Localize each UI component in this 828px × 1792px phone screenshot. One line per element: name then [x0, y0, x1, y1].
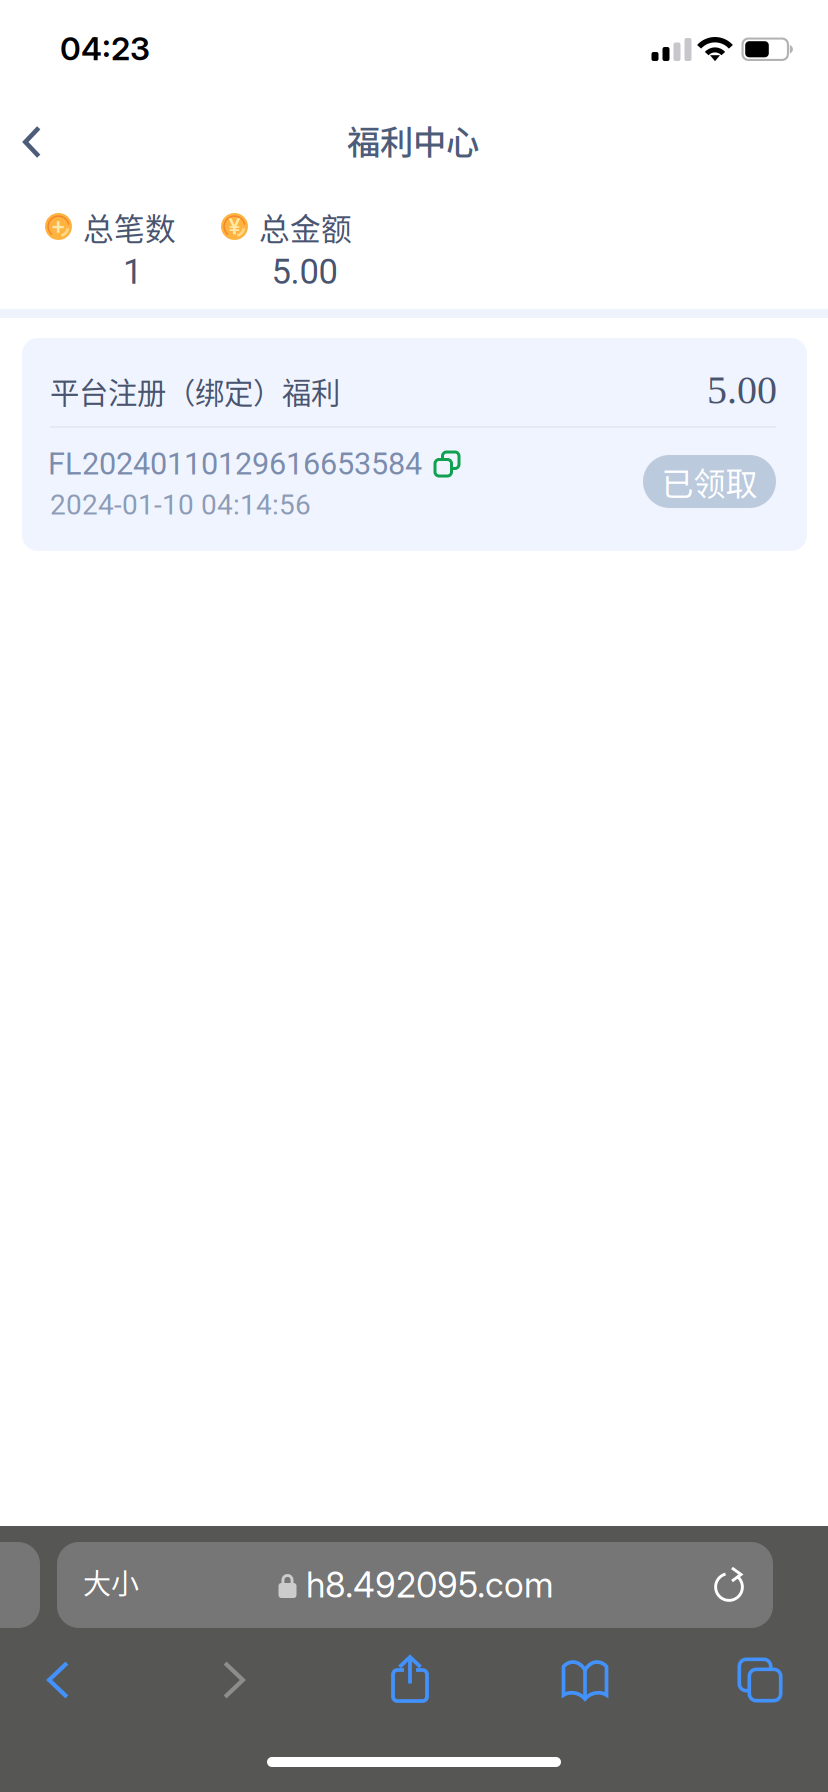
button[interactable]: 大小: [57, 1542, 773, 1628]
staticText: 大小: [83, 1562, 139, 1602]
staticText: 2024-01-10 04:14:56: [50, 489, 311, 521]
staticText: 福利中心: [347, 116, 479, 164]
button[interactable]: 已领取: [643, 455, 776, 508]
button[interactable]: Bookmarks: [547, 1650, 623, 1716]
button[interactable]: Copy code: [426, 443, 468, 485]
staticText: +: [52, 213, 65, 240]
staticText: 04:23: [60, 29, 150, 68]
button[interactable]: Tabs: [722, 1647, 798, 1713]
staticText: 已领取: [661, 458, 757, 505]
staticText: h8.492095.com: [306, 1564, 554, 1606]
button[interactable]: Back: [20, 1647, 96, 1713]
staticText: 5.00: [707, 368, 777, 412]
staticText: 1: [123, 252, 142, 292]
button[interactable]: Forward: [196, 1647, 272, 1713]
staticText: 总金额: [259, 205, 352, 249]
staticText: 5.00: [271, 252, 337, 292]
staticText: FL20240110129616653584: [48, 446, 422, 482]
staticText: ¥: [228, 213, 240, 240]
staticText: 总笔数: [83, 205, 176, 249]
staticText: 平台注册（绑定）福利: [50, 370, 340, 412]
button[interactable]: Share: [372, 1646, 448, 1712]
button[interactable]: Back: [0, 110, 64, 174]
button[interactable]: Reload: [693, 1549, 765, 1621]
